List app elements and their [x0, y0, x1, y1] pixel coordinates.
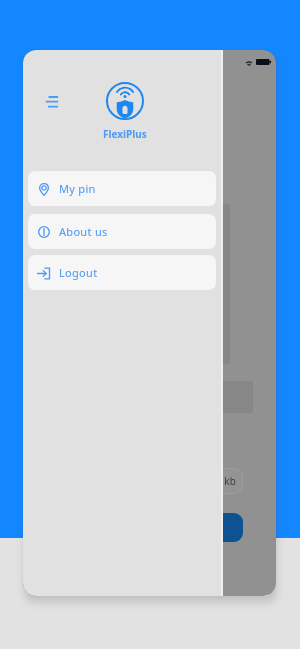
staticText: 5 kb	[216, 474, 236, 488]
staticText: About us	[59, 224, 108, 239]
button[interactable]: My pin	[28, 171, 216, 206]
staticText: My pin	[59, 181, 96, 196]
button[interactable]: About us	[28, 214, 216, 249]
staticText: Logout	[59, 265, 98, 280]
button[interactable]: Logout	[28, 255, 216, 290]
button[interactable]: Menu	[41, 87, 65, 111]
staticText: FlexiPlus	[103, 127, 147, 141]
button[interactable]: Action	[201, 513, 243, 542]
